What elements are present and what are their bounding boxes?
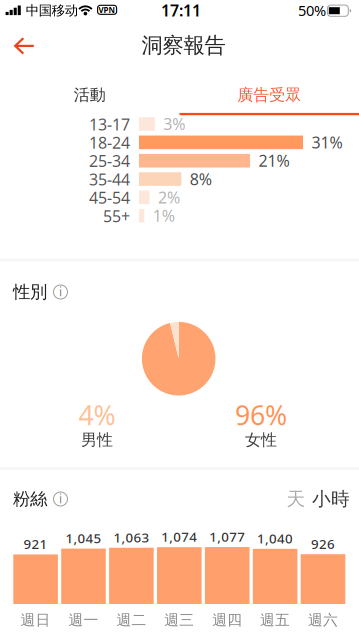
staticText: 31% <box>311 132 342 153</box>
staticText: 週三 <box>164 611 194 629</box>
staticText: 女性 <box>245 430 277 450</box>
staticText: 1,040 <box>257 529 293 547</box>
staticText: 週日 <box>21 611 51 629</box>
staticText: 天 <box>286 487 305 510</box>
staticText: 粉絲 <box>13 488 47 510</box>
staticText: 55+ <box>103 205 130 226</box>
staticText: 2% <box>158 187 180 208</box>
staticText: 18-24 <box>89 132 130 153</box>
staticText: 8% <box>190 168 212 189</box>
staticText: 21% <box>259 150 290 171</box>
staticText: 921 <box>24 535 48 553</box>
staticText: 週六 <box>308 611 338 629</box>
staticText: i <box>59 491 62 507</box>
staticText: 35-44 <box>89 169 130 190</box>
staticText: 1,063 <box>113 528 149 546</box>
staticText: 廣告受眾 <box>237 85 301 105</box>
staticText: 1% <box>153 205 175 226</box>
staticText: 50% <box>298 1 326 20</box>
staticText: 4% <box>78 397 115 433</box>
staticText: 週五 <box>260 611 290 629</box>
staticText: 1,077 <box>209 528 245 545</box>
staticText: 性別 <box>13 281 47 303</box>
staticText: 17:11 <box>161 0 201 21</box>
staticText: 1,045 <box>65 529 101 547</box>
staticText: 926 <box>311 535 335 553</box>
staticText: 25-34 <box>89 150 130 171</box>
staticText: 男性 <box>81 430 113 450</box>
staticText: 1,074 <box>161 528 197 545</box>
staticText: VPN <box>99 4 116 15</box>
button[interactable]: 天 <box>0 0 359 638</box>
staticText: i <box>59 284 62 300</box>
staticText: 小時 <box>312 487 350 510</box>
staticText: 3% <box>163 113 185 134</box>
button[interactable]: 廣告受眾 <box>0 0 359 638</box>
staticText: 中国移动 <box>26 2 78 19</box>
staticText: 96% <box>235 397 287 433</box>
button[interactable]: Back <box>0 0 359 638</box>
button[interactable]: 小時 <box>0 0 359 638</box>
staticText: 活動 <box>74 85 106 105</box>
staticText: 週一 <box>68 611 98 629</box>
staticText: 週二 <box>116 611 146 629</box>
staticText: 洞察報告 <box>141 32 225 59</box>
staticText: 週四 <box>212 611 242 629</box>
staticText: 45-54 <box>89 187 130 208</box>
staticText: 13-17 <box>89 114 130 135</box>
button[interactable]: 活動 <box>0 0 359 638</box>
